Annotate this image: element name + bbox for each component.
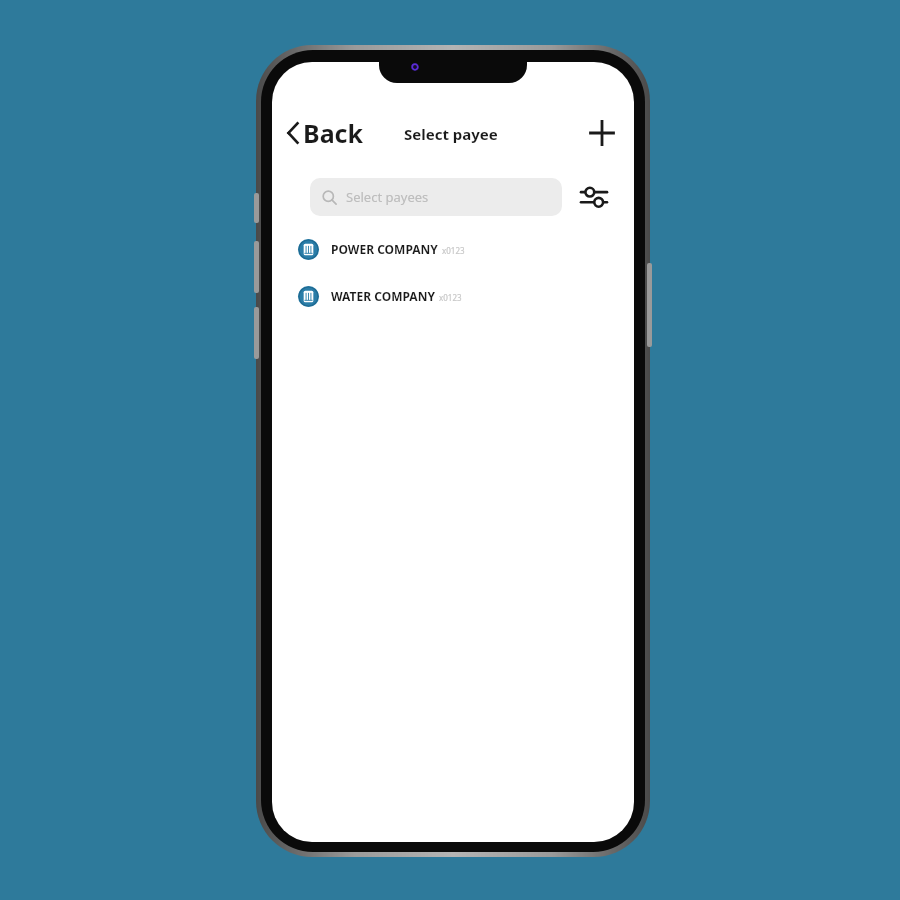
- staticText: Select payees: [346, 188, 429, 206]
- button[interactable]: WATER COMPANY: [272, 285, 634, 307]
- staticText: x0123: [439, 292, 462, 303]
- staticText: WATER COMPANY: [331, 288, 435, 304]
- button[interactable]: Select payees: [310, 178, 562, 216]
- button[interactable]: Filter: [578, 183, 610, 211]
- staticText: POWER COMPANY: [331, 241, 438, 257]
- button[interactable]: POWER COMPANY: [272, 238, 634, 260]
- staticText: x0123: [442, 245, 465, 256]
- staticText: Back: [303, 116, 364, 150]
- button[interactable]: Add payee: [584, 115, 620, 151]
- staticText: Select payee: [404, 124, 498, 144]
- button[interactable]: Back: [282, 112, 368, 154]
